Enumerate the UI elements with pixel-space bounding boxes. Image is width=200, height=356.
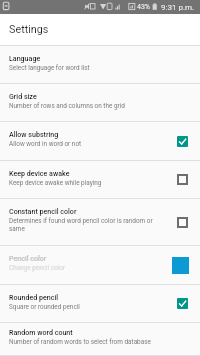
staticText: Keep device awake while playing — [9, 179, 102, 187]
staticText: Allow substring — [9, 130, 59, 138]
staticText: Rounded pencil — [9, 293, 58, 301]
button[interactable]: Toggle setting — [176, 135, 189, 148]
staticText: Language — [9, 54, 41, 62]
staticText: Grid size — [9, 92, 37, 100]
staticText: 9:31 p.m. — [161, 3, 195, 12]
staticText: Select language for word list — [9, 64, 90, 72]
staticText: Pencil color — [9, 254, 47, 262]
button[interactable]: Language — [0, 46, 200, 84]
staticText: Number of rows and columns on the grid — [9, 102, 125, 110]
staticText: Square or rounded pencil — [9, 303, 80, 311]
button[interactable]: Rounded pencil — [0, 285, 200, 323]
staticText: Number of random words to select from da… — [9, 338, 151, 346]
staticText: Random word count — [9, 328, 73, 336]
button[interactable]: Keep device awake — [0, 161, 200, 199]
button[interactable]: Random word count — [0, 323, 200, 356]
button[interactable]: Grid size — [0, 84, 200, 122]
button[interactable]: Toggle setting — [176, 173, 189, 186]
button[interactable]: Toggle setting — [176, 297, 189, 310]
button[interactable]: Toggle setting — [176, 216, 189, 229]
staticText: Change pencil color — [9, 264, 66, 272]
button[interactable]: Allow substring — [0, 122, 200, 161]
button[interactable]: Pencil color — [0, 246, 200, 285]
staticText: Allow word in word or not — [9, 140, 82, 148]
staticText: 43% — [137, 3, 150, 11]
staticText: Keep device awake — [9, 169, 70, 177]
staticText: Settings — [9, 23, 49, 36]
button[interactable]: Constant pencil color — [0, 199, 200, 246]
staticText: Determines if found word pencil color is… — [9, 217, 160, 233]
staticText: Constant pencil color — [9, 207, 77, 215]
